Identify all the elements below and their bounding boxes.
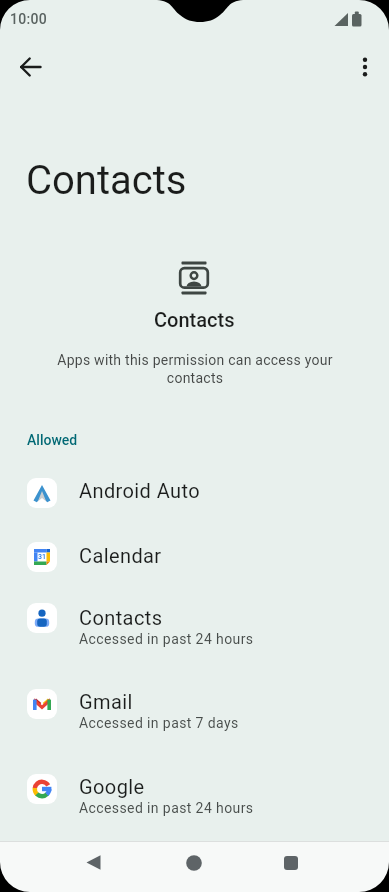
staticText: Calendar <box>79 544 162 567</box>
button[interactable]: Android Auto <box>0 458 389 522</box>
button[interactable]: 31 <box>0 522 389 586</box>
button[interactable] <box>269 841 313 885</box>
staticText: 31 <box>38 553 46 561</box>
button[interactable] <box>343 45 387 89</box>
button[interactable] <box>9 45 53 89</box>
staticText: Gmail <box>79 690 133 713</box>
button[interactable]: Contacts <box>0 586 389 674</box>
button[interactable] <box>172 841 216 885</box>
staticText: Accessed in past 24 hours <box>79 631 254 647</box>
staticText: Contacts <box>79 606 163 629</box>
staticText: Accessed in past 24 hours <box>79 800 254 816</box>
staticText: Allowed <box>27 432 78 448</box>
staticText: 10:00 <box>10 11 48 27</box>
staticText: Accessed in past 7 days <box>79 715 239 731</box>
button[interactable] <box>72 841 116 885</box>
staticText: Apps with this permission can access you… <box>57 352 333 387</box>
button[interactable]: Google <box>0 758 389 842</box>
staticText: Contacts <box>154 308 235 331</box>
staticText: Android Auto <box>79 479 200 502</box>
staticText: Contacts <box>26 157 187 204</box>
staticText: Google <box>79 775 145 798</box>
button[interactable]: Gmail <box>0 674 389 758</box>
